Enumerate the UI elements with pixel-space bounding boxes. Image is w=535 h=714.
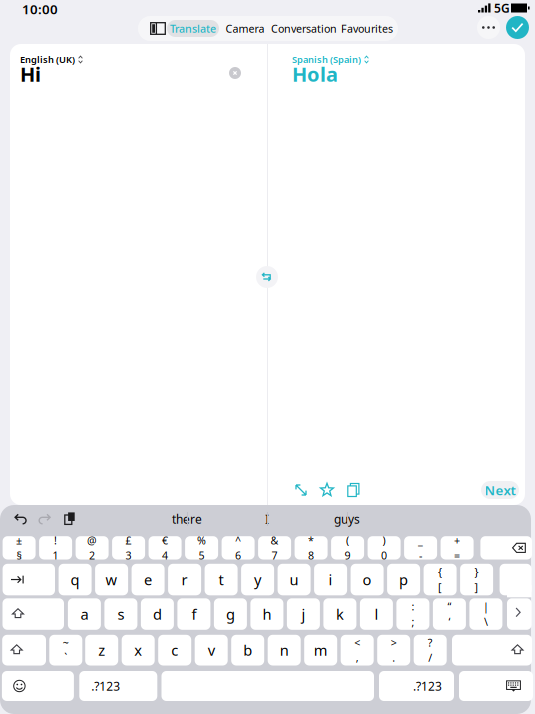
staticText: Camera — [225, 21, 264, 36]
button[interactable]: o — [351, 564, 384, 595]
button[interactable]: } ] — [460, 564, 493, 595]
button[interactable]: > . — [377, 635, 410, 665]
staticText: \ — [484, 614, 488, 629]
button[interactable]: ^ 6 — [222, 536, 255, 559]
button[interactable]: Return — [507, 598, 532, 630]
button[interactable]: Shift — [452, 635, 532, 665]
button[interactable]: f — [177, 598, 210, 630]
staticText: ± — [16, 533, 22, 547]
button[interactable]: h — [250, 598, 283, 630]
button[interactable]: t — [205, 564, 238, 595]
staticText: .?123 — [91, 678, 120, 694]
button[interactable]: n — [268, 635, 301, 665]
staticText: w — [106, 570, 118, 589]
staticText: English (UK) — [20, 53, 75, 66]
button[interactable]: + = — [441, 536, 474, 559]
button[interactable]: Camera — [225, 20, 265, 37]
button[interactable]: .?123 — [79, 671, 157, 701]
button[interactable]: Translate — [167, 20, 219, 37]
button[interactable]: £ 3 — [112, 536, 145, 559]
button[interactable]: ! 1 — [39, 536, 72, 559]
button[interactable]: .?123 — [379, 671, 454, 701]
staticText: € — [162, 533, 168, 547]
button[interactable]: u — [278, 564, 311, 595]
staticText: there — [172, 511, 202, 527]
button[interactable]: d — [141, 598, 174, 630]
button[interactable]: l — [360, 598, 393, 630]
button[interactable]: & 7 — [258, 536, 291, 559]
button[interactable]: ( 9 — [331, 536, 364, 559]
staticText: n — [280, 640, 289, 660]
button[interactable]: Favourites — [342, 20, 392, 37]
staticText: ~ — [63, 635, 69, 650]
button[interactable]: More options — [477, 16, 500, 39]
button[interactable]: Conversation — [274, 20, 334, 37]
button[interactable]: Redo — [36, 511, 54, 527]
staticText: [ — [438, 580, 442, 594]
button[interactable]: Tab — [3, 564, 55, 595]
button[interactable]: < , — [341, 635, 374, 665]
button[interactable]: ~ ` — [49, 635, 82, 665]
button[interactable]: i — [314, 564, 347, 595]
staticText: i — [329, 570, 333, 589]
button[interactable]: g — [214, 598, 247, 630]
button[interactable]: a — [68, 598, 101, 630]
button[interactable]: % 5 — [185, 536, 218, 559]
button[interactable]: : ; — [396, 598, 429, 630]
button[interactable]: k — [323, 598, 356, 630]
button[interactable]: Clear text — [229, 67, 241, 79]
staticText: j — [301, 604, 305, 624]
staticText: = — [454, 548, 460, 563]
button[interactable]: j — [287, 598, 320, 630]
button[interactable]: Emoji — [2, 671, 74, 701]
button[interactable]: m — [304, 635, 337, 665]
button[interactable]: @ 2 — [76, 536, 109, 559]
button[interactable]: Shift — [2, 635, 46, 665]
button[interactable]: there — [107, 509, 267, 529]
button[interactable]: Delete — [480, 536, 532, 559]
button[interactable]: c — [158, 635, 191, 665]
button[interactable]: Undo — [12, 511, 30, 527]
button[interactable]: _ - — [404, 536, 437, 559]
staticText: v — [208, 640, 215, 660]
button[interactable]: Swap languages — [256, 266, 278, 288]
button[interactable]: Next — [481, 481, 519, 499]
button[interactable]: € 4 — [149, 536, 182, 559]
button[interactable]: Copy — [343, 480, 365, 500]
button[interactable]: z — [85, 635, 118, 665]
button[interactable]: Favourite — [316, 480, 338, 500]
button[interactable]: x — [122, 635, 155, 665]
staticText: r — [182, 570, 188, 589]
button[interactable]: ) 0 — [368, 536, 401, 559]
button[interactable]: “ ‘ — [433, 598, 466, 630]
button[interactable]: b — [231, 635, 264, 665]
staticText: 10:00 — [22, 0, 58, 18]
button[interactable]: Sidebar — [150, 22, 166, 35]
button[interactable]: { [ — [424, 564, 457, 595]
button[interactable]: ? / — [414, 635, 447, 665]
staticText: l — [374, 604, 378, 624]
button[interactable]: I — [187, 509, 347, 529]
button[interactable]: Shift — [2, 598, 64, 630]
button[interactable]: w — [95, 564, 128, 595]
button[interactable]: r — [168, 564, 201, 595]
button[interactable]: p — [387, 564, 420, 595]
button[interactable]: Done — [506, 16, 529, 39]
button[interactable]: e — [132, 564, 165, 595]
button[interactable]: Expand — [290, 480, 312, 500]
button[interactable]: y — [241, 564, 274, 595]
staticText: t — [219, 570, 224, 589]
button[interactable]: q — [59, 564, 92, 595]
button[interactable]: ± § — [3, 536, 36, 559]
staticText: 8 — [308, 548, 314, 563]
button[interactable]: Paste — [61, 511, 79, 527]
button[interactable]: | \ — [469, 598, 502, 630]
button[interactable]: Hide keyboard — [459, 671, 533, 701]
staticText: & — [271, 533, 279, 547]
button[interactable]: s — [104, 598, 137, 630]
button[interactable]: guys — [267, 509, 427, 529]
button[interactable]: * 8 — [295, 536, 328, 559]
button[interactable]: v — [195, 635, 228, 665]
staticText: u — [290, 570, 299, 589]
